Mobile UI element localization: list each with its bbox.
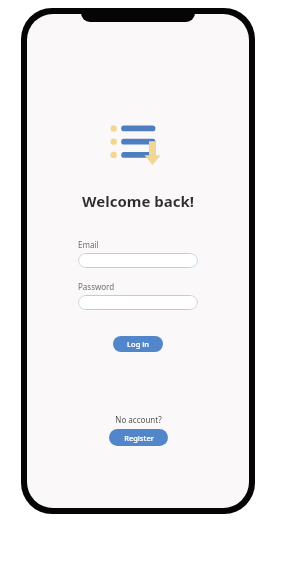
other: List with download arrow (109, 121, 167, 165)
staticText: Email (78, 239, 99, 250)
staticText: Log in (127, 339, 149, 349)
staticText: Welcome back! (82, 191, 194, 211)
staticText: No account? (115, 414, 162, 425)
button[interactable]: Email input (78, 253, 198, 268)
staticText: Password (78, 281, 115, 292)
staticText: Register (124, 433, 154, 443)
button[interactable]: Password input (78, 295, 198, 310)
button[interactable]: Register (109, 429, 168, 446)
button[interactable]: Log in (113, 336, 163, 352)
